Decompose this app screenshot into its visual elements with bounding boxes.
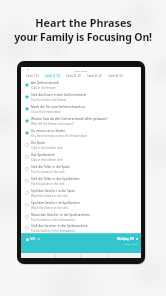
button[interactable]: Cards 41-50 — [106, 73, 125, 79]
staticText: Mach die Tür vom Gefrierschrank zu — [31, 105, 86, 109]
button[interactable]: Record — [26, 238, 29, 241]
button[interactable]: Favourite — [21, 115, 141, 127]
staticText: Cards 41-50 — [108, 74, 123, 78]
staticText: Spül das Geschirr im Spülbecken — [31, 201, 80, 205]
staticText: Put the dishes in the dishwasher — [31, 218, 76, 222]
button[interactable]: Favourite — [25, 155, 29, 159]
staticText: Cards 11-20 — [45, 74, 60, 78]
button[interactable]: Favourite — [21, 223, 141, 233]
staticText: Am Gefrierschrank — [31, 81, 60, 85]
staticText: Räum das Geschirr in die Spülmaschine — [31, 213, 90, 217]
button[interactable]: Favourite — [21, 163, 141, 175]
staticText: Stell das Geschirr in die Spülmaschine — [31, 224, 88, 228]
button[interactable]: Favourite — [25, 215, 29, 219]
staticText: Jose Cards — [75, 69, 88, 72]
staticText: 0:00 — [30, 237, 36, 241]
button[interactable]: Favourite — [25, 143, 29, 147]
staticText: your Family is Focusing On! — [14, 30, 152, 44]
staticText: Cold in the freezer — [31, 86, 56, 90]
button[interactable]: Play — [38, 238, 40, 240]
button[interactable]: Favourite — [25, 83, 29, 87]
staticText: Why left the freezer door open? — [31, 122, 74, 126]
staticText: Put the dishes in the dishwasher — [31, 229, 76, 233]
button[interactable]: Favourite — [21, 103, 141, 115]
staticText: Cards 21-30 — [66, 74, 81, 78]
staticText: Stell die Teller in das Spülbecken — [31, 177, 80, 181]
staticText: Loop 1 of 10 — [124, 243, 138, 246]
button[interactable]: Favourite — [21, 127, 141, 139]
button[interactable]: Cards 21-30 — [64, 73, 83, 79]
button[interactable]: Multiplay Off — [117, 237, 134, 241]
staticText: Cards 31-40 — [87, 74, 102, 78]
button[interactable]: Favourite — [21, 175, 141, 187]
staticText: Wash the dishes in the sink — [31, 194, 68, 198]
staticText: Stell das Essen in den Gefrierschrank — [31, 93, 87, 97]
button[interactable]: Favourite — [25, 203, 29, 207]
staticText: Put the food in the freezer — [31, 98, 67, 102]
button[interactable]: Favourite — [25, 131, 29, 135]
staticText: Put the plates in the sink — [31, 170, 65, 174]
button[interactable]: Favourite — [25, 119, 29, 123]
staticText: Cold in the kitchen sink — [31, 146, 63, 150]
button[interactable]: Favourite — [21, 199, 141, 211]
button[interactable]: Favourite — [21, 139, 141, 151]
button[interactable]: Favourite — [25, 191, 29, 195]
staticText: Spül das Geschirr in die Spüle — [31, 189, 76, 193]
button[interactable]: Favourite — [25, 167, 29, 171]
button[interactable]: Favourite — [25, 95, 29, 99]
staticText: Warum hast du den Gefrierschrank offen g… — [31, 117, 108, 121]
staticText: Die Spüle — [31, 141, 46, 145]
button[interactable]: Favourite — [21, 151, 141, 163]
staticText: You have to keep in shut the freezer doo… — [31, 134, 87, 138]
staticText: Stell die Teller in die Spüle — [31, 165, 70, 169]
staticText: Close the freezer door — [31, 110, 62, 114]
staticText: Cards 1-10 — [26, 74, 39, 78]
button[interactable]: Favourite — [21, 211, 141, 223]
button[interactable]: Favourite — [21, 79, 141, 91]
staticText: Du musst sie zu Boden — [31, 129, 66, 133]
button[interactable]: Cards 1-10 — [24, 73, 41, 79]
button[interactable]: Cards 11-20 — [43, 73, 62, 79]
button[interactable]: Favourite — [21, 91, 141, 103]
staticText: Put the plates in the sink — [31, 182, 65, 186]
button[interactable]: Favourite — [25, 226, 29, 230]
staticText: Das Spülbecken — [31, 153, 55, 157]
staticText: Wash the dishes in the sink — [31, 206, 68, 210]
staticText: Heart the Phrases — [35, 15, 132, 30]
button[interactable]: Favourite — [21, 187, 141, 199]
staticText: Cold in the kitchen sink — [31, 158, 63, 162]
button[interactable]: Favourite — [25, 179, 29, 183]
button[interactable]: Cards 31-40 — [85, 73, 104, 79]
button[interactable]: Favourite — [25, 107, 29, 111]
